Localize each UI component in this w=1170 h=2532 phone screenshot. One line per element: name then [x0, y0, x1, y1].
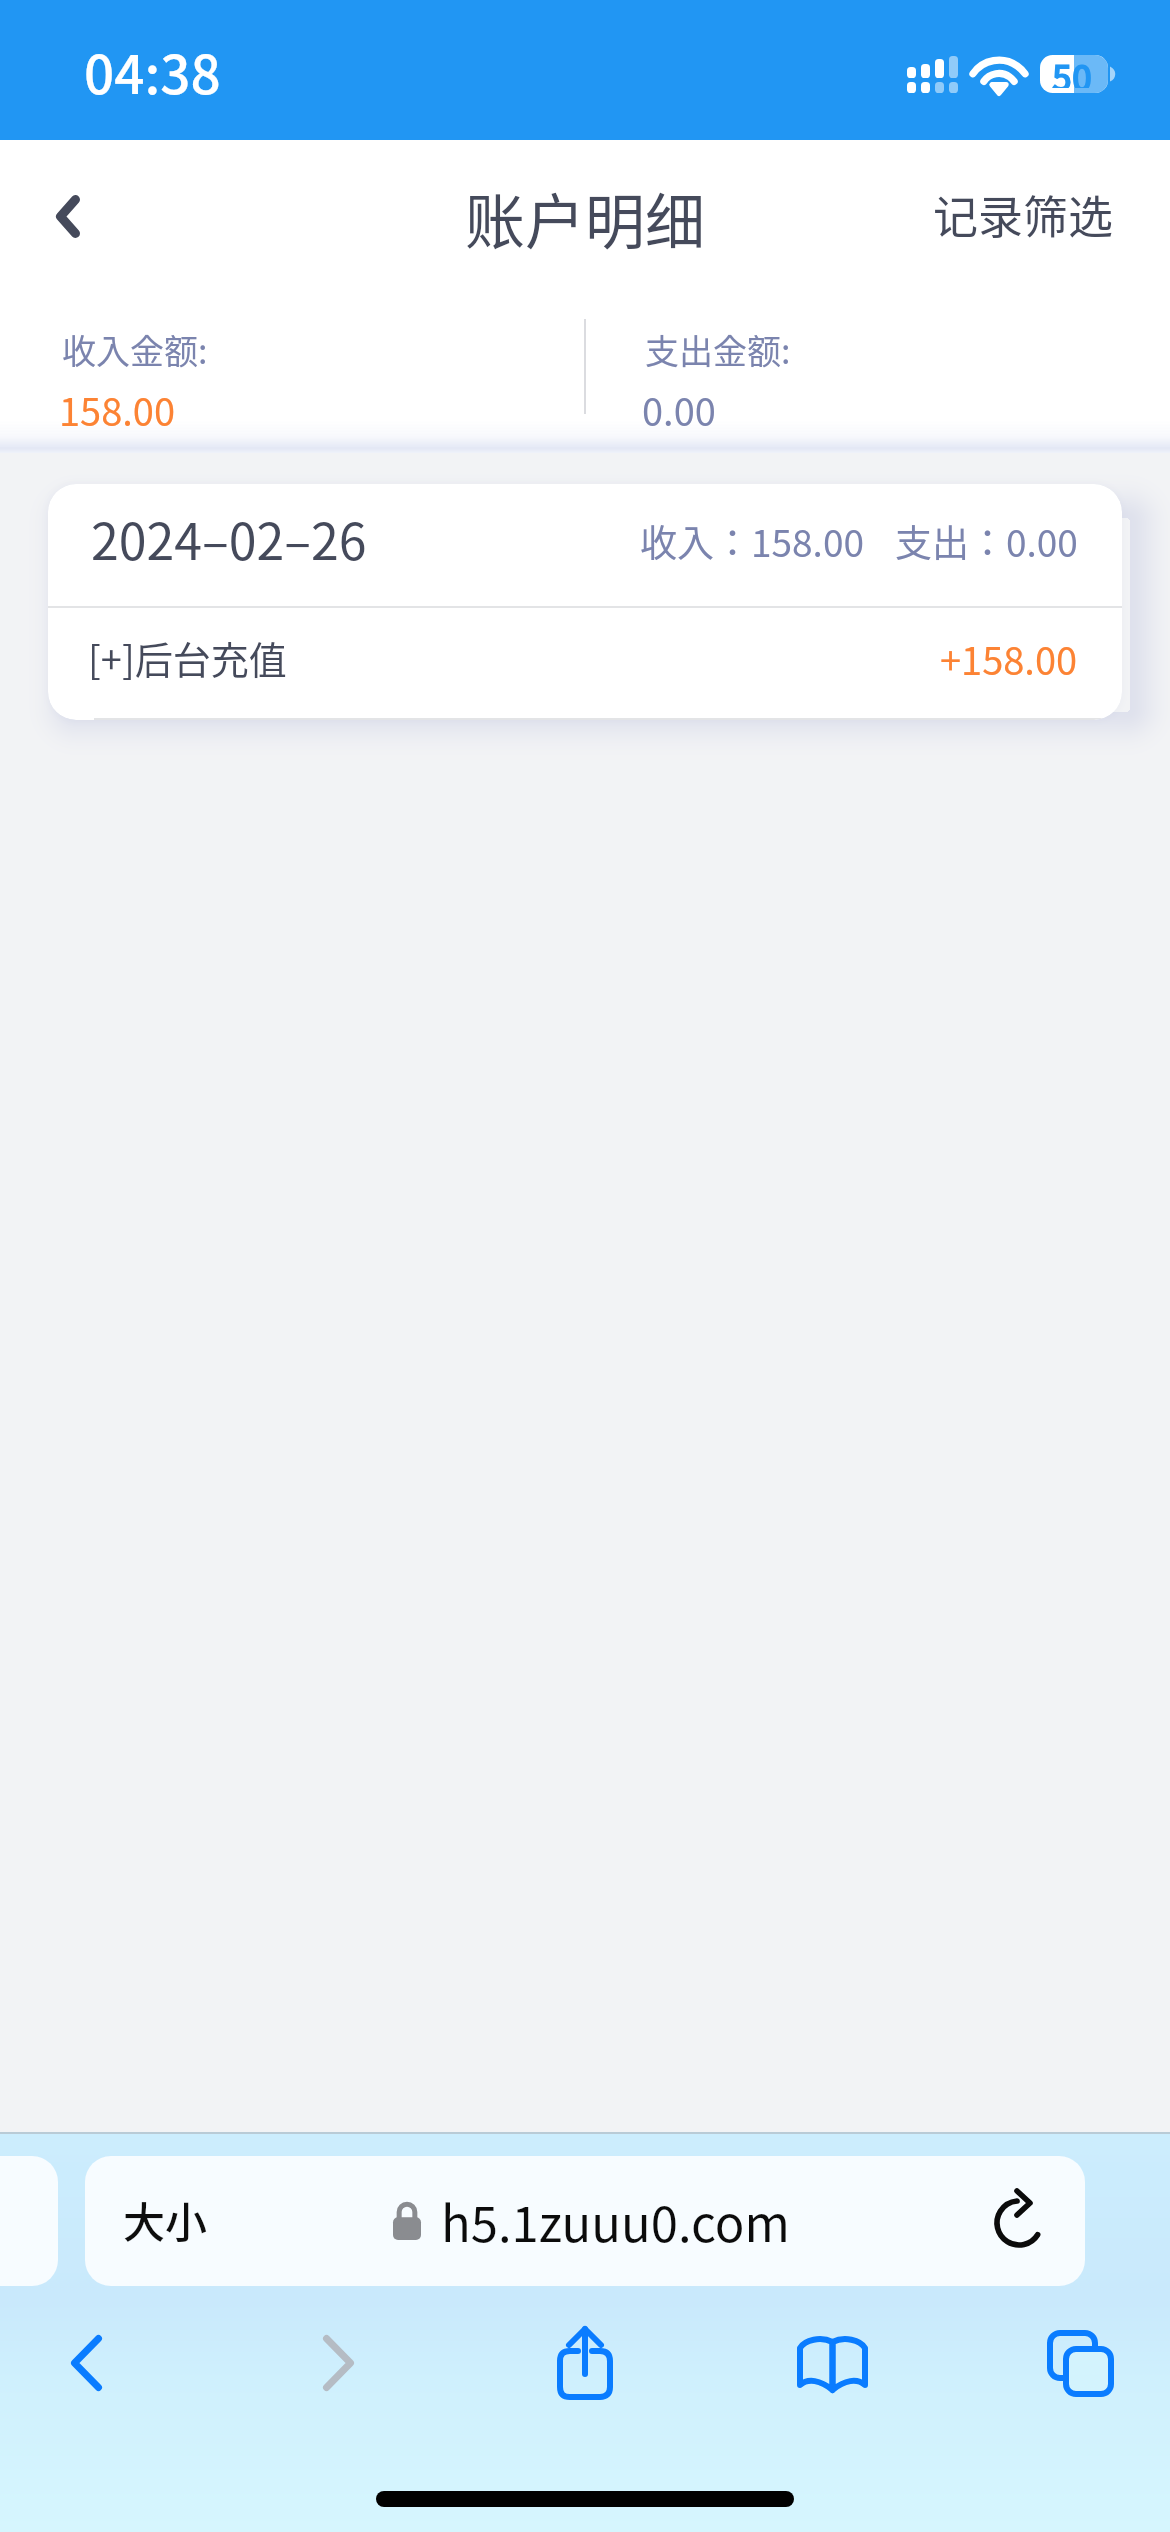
staticText: 支出：0.00 [895, 514, 1078, 568]
staticText: h5.1zuuu0.com [441, 2185, 790, 2256]
button[interactable]: 记录筛选 [873, 154, 1170, 279]
button[interactable]: Forward [264, 2308, 412, 2418]
button[interactable]: Tabs [1006, 2308, 1154, 2418]
button[interactable]: Bookmarks [758, 2308, 906, 2418]
button[interactable]: 大小 [85, 2156, 1085, 2286]
staticText: 收入金额: [62, 325, 208, 374]
staticText: 账户明细 [465, 174, 705, 261]
button[interactable]: 2024–02–26 [48, 484, 1122, 606]
button[interactable]: Back [12, 2308, 160, 2418]
staticText: 大小 [123, 2189, 208, 2250]
staticText: +158.00 [940, 631, 1078, 686]
button[interactable]: [+]后台充值 [48, 608, 1122, 718]
staticText: 50 [1052, 50, 1092, 88]
staticText: 2024–02–26 [91, 502, 367, 574]
staticText: 记录筛选 [933, 182, 1114, 247]
staticText: 0.00 [642, 382, 716, 437]
staticText: 支出金额: [645, 325, 791, 374]
staticText: [+]后台充值 [88, 630, 287, 685]
staticText: 收入：158.00 [640, 514, 864, 568]
staticText: 04:38 [84, 33, 221, 110]
button[interactable]: Reload [987, 2186, 1057, 2256]
button[interactable]: Share [511, 2308, 659, 2418]
button[interactable]: Back [8, 151, 128, 281]
staticText: 158.00 [59, 382, 176, 437]
